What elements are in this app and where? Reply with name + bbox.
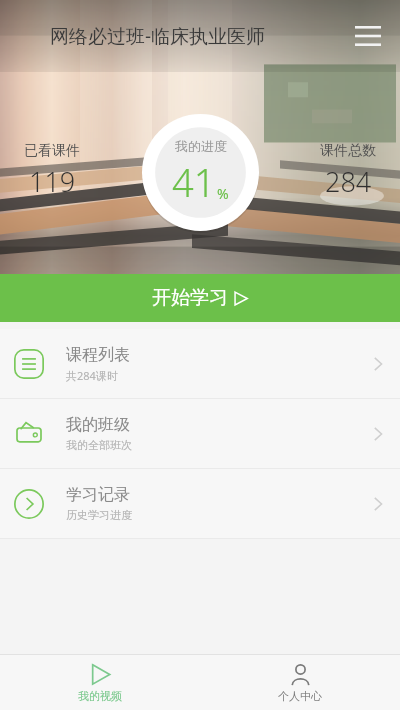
button[interactable]: 学习记录 [0, 469, 400, 538]
button[interactable]: 个人中心 [200, 655, 400, 710]
staticText: 已看课件 [24, 142, 80, 160]
staticText: 我的全部班次 [66, 438, 132, 452]
staticText: 历史学习进度 [66, 508, 132, 522]
staticText: 个人中心 [278, 689, 322, 703]
staticText: 学习记录 [66, 485, 130, 505]
staticText: 284 [325, 163, 372, 200]
button[interactable]: Menu [346, 14, 390, 58]
staticText: 我的班级 [66, 415, 130, 435]
staticText: 课件总数 [320, 142, 376, 160]
staticText: 119 [29, 163, 76, 200]
staticText: 网络必过班-临床执业医师 [50, 23, 266, 49]
staticText: 41 [172, 156, 216, 208]
button[interactable]: 我的视频 [0, 655, 200, 710]
button[interactable]: 开始学习 [0, 274, 400, 322]
staticText: 课程列表 [66, 345, 130, 365]
button[interactable]: 课程列表 [0, 329, 400, 398]
staticText: 开始学习 [152, 286, 228, 310]
button[interactable]: 我的进度 [142, 114, 259, 231]
staticText: 共284课时 [66, 368, 118, 383]
staticText: % [217, 184, 229, 203]
staticText: 我的进度 [175, 138, 227, 154]
staticText: 我的视频 [78, 689, 122, 703]
button[interactable]: 我的班级 [0, 399, 400, 468]
